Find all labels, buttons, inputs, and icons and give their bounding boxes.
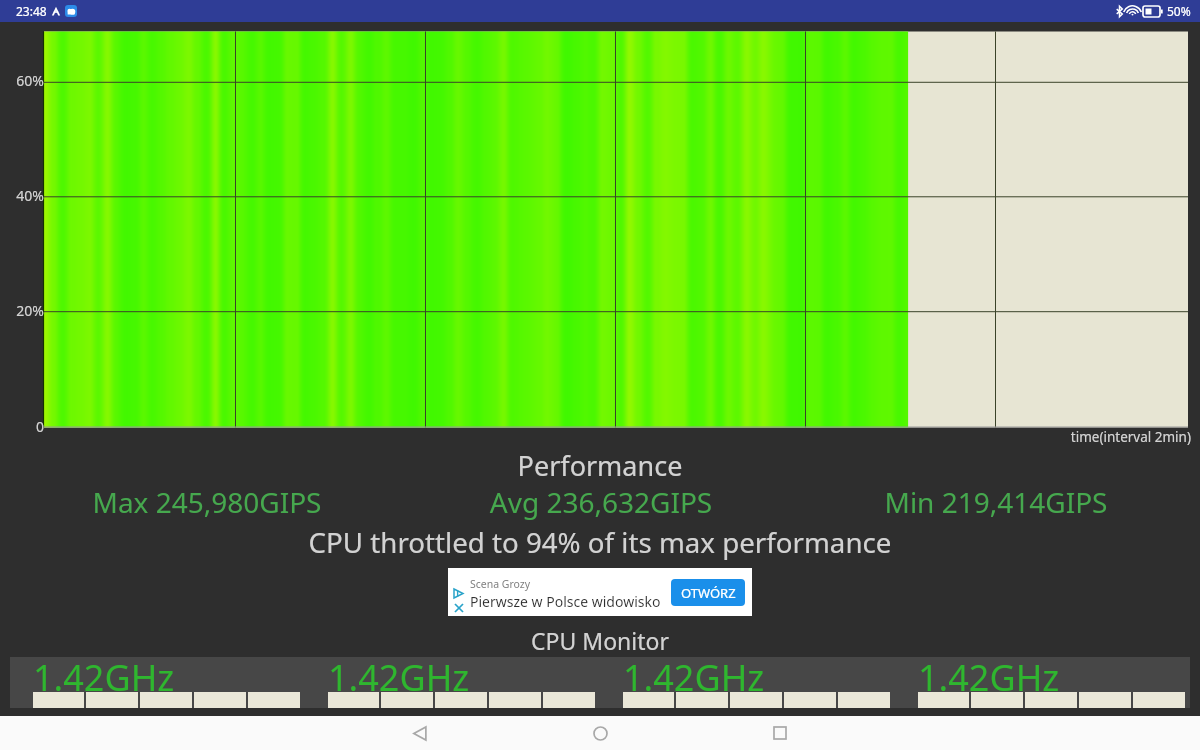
staticText: Scena Grozy bbox=[470, 577, 531, 591]
staticText: Min 219,414GIPS bbox=[796, 483, 1196, 521]
staticText: 1.42GHz bbox=[623, 653, 765, 702]
button[interactable]: Scena Grozy bbox=[448, 568, 752, 616]
button[interactable]: OTWÓRZ bbox=[671, 579, 745, 606]
staticText: 50% bbox=[1167, 3, 1191, 19]
button[interactable]: Performance history chart bbox=[0, 0, 1200, 440]
staticText: 1.42GHz bbox=[328, 653, 470, 702]
staticText: 20% bbox=[7, 301, 44, 320]
staticText: Avg 236,632GIPS bbox=[401, 483, 801, 521]
staticText: Max 245,980GIPS bbox=[7, 483, 407, 521]
button[interactable]: 1.42GHz bbox=[600, 657, 895, 708]
staticText: Performance bbox=[0, 447, 1200, 484]
button[interactable]: Recents bbox=[750, 716, 810, 750]
staticText: CPU throttled to 94% of its max performa… bbox=[0, 523, 1200, 561]
staticText: 1.42GHz bbox=[918, 653, 1060, 702]
staticText: 40% bbox=[7, 186, 44, 205]
staticText: 0 bbox=[7, 417, 44, 436]
button[interactable]: 1.42GHz bbox=[305, 657, 600, 708]
staticText: CPU Monitor bbox=[0, 625, 1200, 656]
button[interactable]: Back bbox=[390, 716, 450, 750]
button[interactable]: 1.42GHz bbox=[10, 657, 305, 708]
staticText: 1.42GHz bbox=[33, 653, 175, 702]
button[interactable]: 1.42GHz bbox=[895, 657, 1190, 708]
staticText: 23:48 bbox=[16, 3, 47, 19]
button[interactable]: Home bbox=[570, 716, 630, 750]
staticText: 60% bbox=[7, 71, 44, 90]
staticText: Pierwsze w Polsce widowisko bbox=[470, 592, 661, 611]
staticText: time(interval 2min) bbox=[0, 428, 1191, 446]
staticText: OTWÓRZ bbox=[681, 584, 736, 602]
